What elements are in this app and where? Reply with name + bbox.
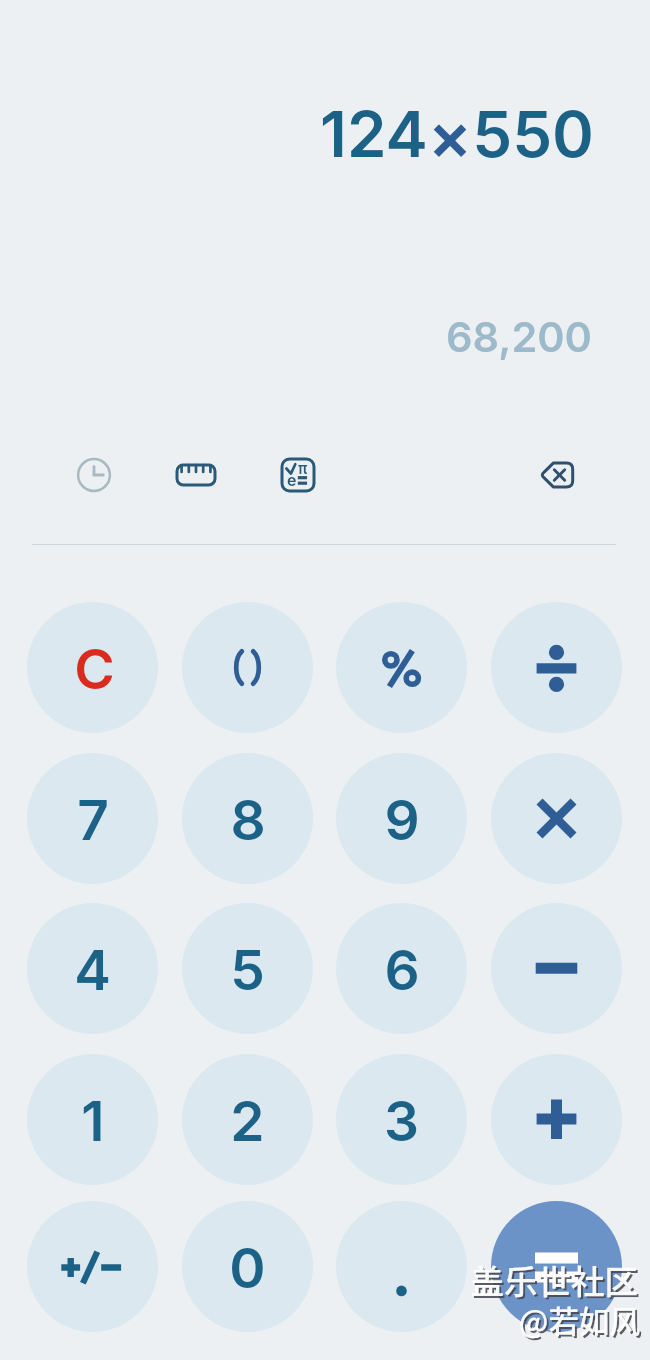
button[interactable]: Scientific calculator	[272, 449, 324, 501]
button[interactable]: 1	[27, 1054, 158, 1185]
button[interactable]: 7	[27, 753, 158, 884]
staticText: C	[74, 636, 115, 703]
button[interactable]: 6	[336, 903, 467, 1034]
staticText: 68,200	[0, 312, 592, 368]
staticText: 7	[77, 787, 109, 854]
staticText: 124×550	[0, 95, 594, 175]
staticText: @若如风	[0, 1298, 640, 1350]
button[interactable]: 2	[182, 1054, 313, 1185]
staticText: 0	[229, 1235, 266, 1302]
staticText: 9	[384, 787, 420, 854]
button[interactable]: 9	[336, 753, 467, 884]
staticText: @若如风	[0, 1300, 642, 1352]
button[interactable]: Minus	[491, 903, 622, 1034]
button[interactable]: Divide	[491, 602, 622, 733]
staticText: π	[298, 459, 308, 477]
button[interactable]: 0	[182, 1201, 313, 1332]
staticText: 5	[230, 937, 265, 1004]
button[interactable]: Clear	[27, 602, 158, 733]
staticText: 2	[230, 1088, 265, 1155]
button[interactable]: Multiply	[491, 753, 622, 884]
button[interactable]: Percent	[336, 602, 467, 733]
staticText: 6	[384, 937, 420, 1004]
staticText: 盖乐世社区	[0, 1257, 640, 1314]
button[interactable]: History	[68, 449, 120, 501]
button[interactable]: 4	[27, 903, 158, 1034]
button[interactable]: 5	[182, 903, 313, 1034]
button[interactable]: Equals	[491, 1201, 622, 1332]
staticText: 3	[384, 1088, 419, 1155]
button[interactable]: Plus	[491, 1054, 622, 1185]
button[interactable]: 8	[182, 753, 313, 884]
button[interactable]: Unit converter	[170, 449, 222, 501]
staticText: 4	[74, 937, 111, 1004]
staticText: 8	[230, 787, 266, 854]
button[interactable]: Backspace	[531, 449, 583, 501]
staticText: 盖乐世社区	[0, 1255, 638, 1312]
staticText: e	[287, 470, 297, 489]
button[interactable]: Parentheses	[182, 602, 313, 733]
button[interactable]: Decimal point	[336, 1201, 467, 1332]
button[interactable]: Plus minus	[27, 1201, 158, 1332]
button[interactable]: 3	[336, 1054, 467, 1185]
staticText: 1	[81, 1088, 105, 1155]
